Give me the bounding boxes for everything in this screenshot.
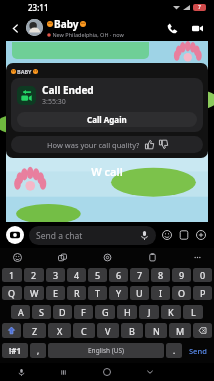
button[interactable]: Send [184, 343, 212, 358]
button[interactable]: 0 [193, 268, 212, 282]
button[interactable]: 9 [172, 268, 191, 282]
staticText: BABY [17, 68, 32, 75]
staticText: P [200, 287, 206, 299]
button[interactable]: Q [2, 286, 22, 300]
button[interactable]: K [161, 305, 181, 319]
staticText: I [159, 287, 163, 299]
button[interactable]: N [145, 323, 167, 338]
staticText: Call Ended [42, 83, 94, 97]
button[interactable]: V [97, 323, 119, 338]
button[interactable]: Call Again [17, 112, 197, 127]
button[interactable]: L [183, 305, 203, 319]
staticText: !#1 [9, 345, 21, 356]
button[interactable]: Backspace [193, 323, 212, 338]
button[interactable]: R [67, 286, 86, 300]
button[interactable]: 3 [46, 268, 65, 282]
staticText: L [191, 306, 196, 318]
staticText: T [95, 287, 101, 299]
button[interactable]: Z [23, 323, 46, 338]
staticText: Z [32, 325, 38, 337]
button[interactable]: Video call [187, 18, 207, 38]
button[interactable]: 7 [130, 268, 149, 282]
button[interactable]: M [169, 323, 191, 338]
button[interactable]: Voice call [162, 18, 182, 38]
button[interactable]: X [48, 323, 71, 338]
button[interactable]: Settings [100, 250, 114, 264]
button[interactable]: A [11, 305, 30, 319]
button[interactable]: Y [109, 286, 128, 300]
button[interactable]: 2 [24, 268, 44, 282]
button[interactable]: Home [85, 363, 128, 381]
button[interactable]: More options [190, 250, 204, 264]
button[interactable]: Emoji [10, 250, 24, 264]
button[interactable]: C [73, 323, 95, 338]
button[interactable]: , [30, 343, 46, 358]
button[interactable]: U [130, 286, 149, 300]
button[interactable]: B [121, 323, 143, 338]
staticText: K [168, 306, 174, 318]
button[interactable]: Hide keyboard [128, 363, 171, 381]
staticText: 6 [116, 269, 122, 281]
button[interactable]: Gallery [177, 228, 191, 242]
button[interactable]: F [74, 305, 93, 319]
button[interactable]: W [24, 286, 44, 300]
staticText: E [53, 287, 59, 299]
button[interactable]: Voice input [0, 363, 42, 381]
staticText: Call Again [87, 114, 127, 125]
button[interactable]: I [151, 286, 170, 300]
button[interactable]: Camera [6, 226, 24, 244]
button[interactable]: Clipboard [145, 250, 159, 264]
staticText: B [129, 325, 135, 337]
button[interactable]: Shift [2, 323, 21, 338]
button[interactable]: G [95, 305, 115, 319]
button[interactable]: H [117, 305, 137, 319]
button[interactable]: 8 [151, 268, 170, 282]
staticText: 0 [200, 269, 206, 281]
button[interactable] [26, 19, 43, 36]
button[interactable]: 6 [109, 268, 128, 282]
button[interactable]: How was your call quality? [11, 136, 203, 153]
staticText: R [74, 287, 80, 299]
button[interactable]: 5 [88, 268, 107, 282]
button[interactable]: Stickers [160, 228, 174, 242]
button[interactable]: T [88, 286, 107, 300]
staticText: X [57, 325, 63, 337]
button[interactable]: Send a chat [36, 226, 149, 245]
button[interactable]: E [46, 286, 65, 300]
staticText: V [105, 325, 111, 337]
staticText: 9 [179, 269, 185, 281]
button[interactable]: S [32, 305, 51, 319]
button[interactable]: P [193, 286, 212, 300]
staticText: D [59, 306, 66, 318]
staticText: N [153, 325, 160, 337]
staticText: 8 [158, 269, 164, 281]
staticText: Send [189, 346, 207, 356]
button[interactable]: 4 [67, 268, 86, 282]
button[interactable]: O [172, 286, 191, 300]
button[interactable]: Baby [47, 17, 162, 38]
staticText: F [81, 306, 86, 318]
button[interactable]: Add [194, 228, 208, 242]
staticText: W [30, 287, 39, 299]
staticText: H [124, 306, 131, 318]
staticText: Q [8, 287, 16, 299]
staticText: 2 [31, 269, 37, 281]
button[interactable]: Recents [42, 363, 85, 381]
button[interactable] [12, 42, 149, 59]
staticText: Baby [54, 17, 79, 31]
staticText: 7 [137, 269, 143, 281]
button[interactable]: Back [7, 20, 23, 36]
staticText: . [173, 345, 176, 356]
button[interactable]: English (US) [48, 343, 164, 358]
button[interactable]: . [166, 343, 182, 358]
staticText: , [37, 345, 40, 356]
button[interactable]: !#1 [2, 343, 28, 358]
button[interactable]: Translate [55, 250, 69, 264]
staticText: A [18, 306, 24, 318]
button[interactable]: 1 [2, 268, 22, 282]
staticText: 3:55:30 [42, 97, 66, 107]
staticText: O [178, 287, 186, 299]
button[interactable]: J [139, 305, 159, 319]
staticText: 1 [9, 269, 15, 281]
button[interactable]: D [53, 305, 72, 319]
